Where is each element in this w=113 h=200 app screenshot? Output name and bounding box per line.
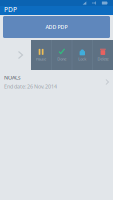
staticText: Delete (97, 56, 108, 62)
button[interactable]: Pause (31, 40, 51, 70)
button[interactable]: Done (52, 40, 72, 70)
button[interactable]: NOACs (0, 70, 113, 94)
button[interactable]: Delete (93, 40, 113, 70)
staticText: Lock (78, 56, 86, 62)
staticText: NOACs (4, 74, 21, 81)
staticText: ADD PDP (45, 23, 67, 31)
staticText: End date: 26 Nov. 2014 (4, 83, 57, 90)
button[interactable]: ADD PDP (3, 16, 110, 38)
staticText: PDP (4, 5, 17, 14)
staticText: Done (57, 56, 66, 62)
button[interactable]: Lock (72, 40, 92, 70)
staticText: Pause (36, 56, 46, 62)
